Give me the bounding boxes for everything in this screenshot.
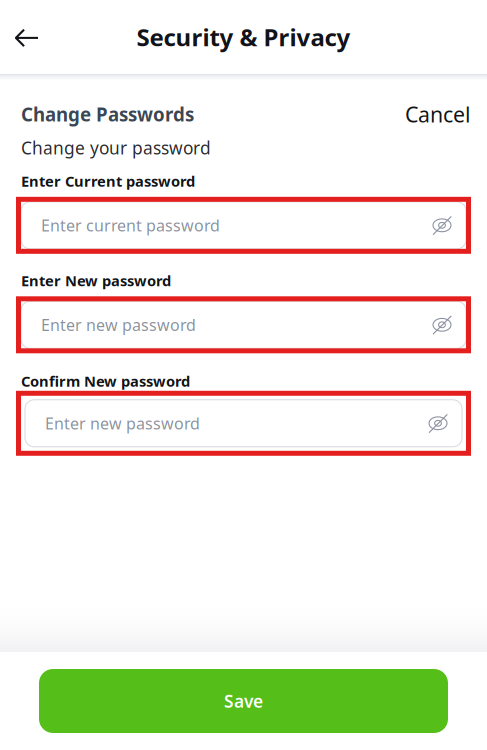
staticText: Change your password — [21, 136, 211, 159]
button[interactable]: Cancel — [405, 100, 471, 128]
staticText: Security & Privacy — [136, 21, 350, 53]
staticText: Confirm New password — [21, 371, 190, 391]
button[interactable]: Show password — [427, 310, 457, 340]
staticText: Enter current password — [41, 215, 220, 236]
staticText: Cancel — [405, 100, 471, 128]
staticText: Save — [224, 689, 263, 712]
button[interactable]: Back — [0, 14, 53, 60]
staticText: Change Passwords — [21, 102, 194, 127]
staticText: Enter new password — [41, 314, 196, 335]
staticText: Enter New password — [21, 271, 171, 290]
staticText: Enter Current password — [21, 171, 195, 191]
button[interactable]: Show password — [427, 210, 457, 240]
staticText: Enter new password — [45, 413, 200, 434]
button[interactable]: Save — [39, 669, 448, 733]
button[interactable]: Show password — [423, 408, 453, 438]
